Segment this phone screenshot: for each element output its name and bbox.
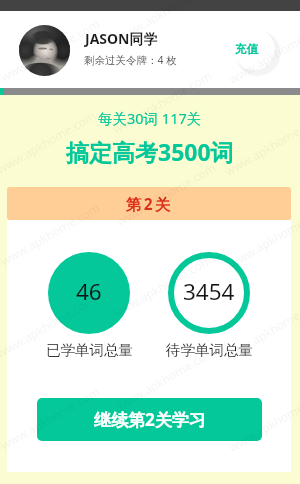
staticText: www.apkhome.com (109, 251, 214, 321)
staticText: 剩余过关令牌：4 枚 (84, 53, 177, 67)
staticText: 第2关 (126, 193, 173, 214)
staticText: 46 (76, 276, 102, 307)
staticText: 充值 (235, 42, 258, 56)
staticText: 3454 (183, 276, 235, 307)
staticText: www.apkhome.com (113, 343, 218, 413)
staticText: JASON同学 (85, 29, 158, 48)
staticText: www.apkhome.com (113, 159, 218, 229)
staticText: www.apkhome.com (225, 17, 300, 87)
staticText: 已学单词总量 (46, 341, 133, 359)
staticText: www.apkhome.com (113, 0, 218, 45)
staticText: www.apkhome.com (221, 293, 300, 363)
staticText: www.apkhome.com (0, 15, 102, 85)
staticText: www.apkhome.com (0, 291, 98, 361)
staticText: www.apkhome.com (221, 109, 300, 179)
staticText: www.apkhome.com (0, 199, 102, 269)
staticText: 待学单词总量 (166, 341, 253, 359)
staticText: www.apkhome.com (225, 385, 300, 455)
staticText: www.apkhome.com (225, 201, 300, 271)
staticText: 继续第2关学习 (94, 408, 206, 431)
staticText: 每关30词 117关 (98, 108, 202, 128)
staticText: www.apkhome.com (109, 67, 214, 137)
staticText: www.apkhome.com (0, 107, 98, 177)
button[interactable]: 充值 (226, 23, 282, 79)
staticText: 搞定高考3500词 (66, 136, 234, 167)
staticText: www.apkhome.com (0, 383, 102, 453)
button[interactable]: 继续第2关学习 (37, 398, 262, 441)
